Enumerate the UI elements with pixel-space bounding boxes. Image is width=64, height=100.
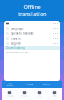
button[interactable]: Language xyxy=(4,26,60,31)
button[interactable]: Camera xyxy=(4,36,60,41)
button[interactable]: Chat xyxy=(32,88,47,99)
staticText: Speak to translate xyxy=(11,32,34,35)
button[interactable]: Reverse xyxy=(43,84,50,85)
staticText: English xyxy=(11,42,21,45)
button[interactable]: Translate xyxy=(26,84,33,85)
staticText: translation xyxy=(18,10,46,18)
staticText: Offline xyxy=(23,3,40,10)
staticText: decoder xyxy=(6,84,13,86)
button[interactable]: English xyxy=(4,41,60,46)
button[interactable]: Phrases xyxy=(17,88,32,99)
button[interactable]: Speak to translate xyxy=(4,31,60,36)
button[interactable]: Translate xyxy=(2,88,17,99)
staticText: Reverse xyxy=(43,84,50,85)
button[interactable]: The xyxy=(4,81,16,87)
staticText: Translate xyxy=(6,95,13,97)
staticText: The xyxy=(8,83,11,84)
staticText: Language xyxy=(11,27,24,30)
staticText: Offline xyxy=(52,95,56,97)
staticText: Please take this into consideration xyxy=(6,52,28,53)
staticText: Downloading xyxy=(6,46,25,50)
button[interactable]: Offline xyxy=(47,88,62,99)
staticText: Translate xyxy=(26,84,33,85)
staticText: Camera xyxy=(11,37,20,40)
